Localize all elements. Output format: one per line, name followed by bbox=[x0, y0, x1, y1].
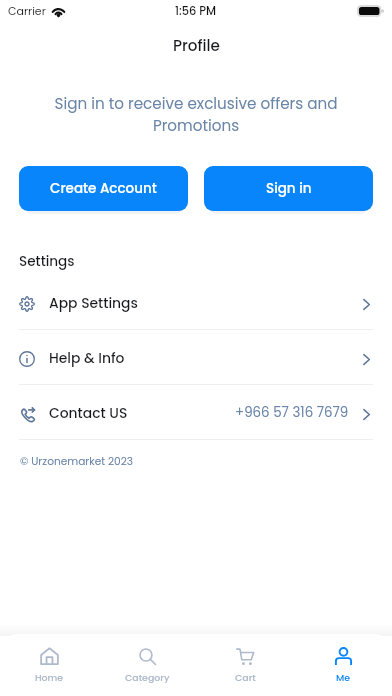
staticText: App Settings bbox=[49, 293, 138, 312]
staticText: © Urzonemarket 2023 bbox=[20, 454, 134, 469]
staticText: Sign in to receive exclusive offers and … bbox=[26, 93, 366, 136]
staticText: 1:56 PM bbox=[175, 3, 217, 19]
staticText: Cart bbox=[235, 671, 256, 684]
button[interactable]: Cart bbox=[196, 634, 294, 684]
staticText: Sign in bbox=[266, 179, 312, 198]
staticText: Category bbox=[125, 671, 170, 684]
button[interactable]: Me bbox=[294, 634, 392, 684]
staticText: Contact US bbox=[49, 403, 128, 422]
staticText: +966 57 316 7679 bbox=[235, 403, 349, 422]
button[interactable]: Create Account bbox=[19, 166, 188, 211]
button[interactable]: Contact US bbox=[0, 385, 392, 439]
button[interactable]: Category bbox=[98, 634, 196, 684]
button[interactable]: Sign in bbox=[204, 166, 373, 211]
staticText: Home bbox=[35, 671, 64, 684]
staticText: Settings bbox=[19, 252, 75, 271]
staticText: Create Account bbox=[50, 179, 157, 198]
button[interactable]: App Settings bbox=[0, 275, 392, 329]
staticText: Me bbox=[336, 671, 351, 684]
staticText: Carrier bbox=[8, 3, 46, 18]
staticText: Help & Info bbox=[49, 348, 125, 367]
button[interactable]: Help & Info bbox=[0, 330, 392, 384]
staticText: Profile bbox=[173, 35, 220, 56]
button[interactable]: Home bbox=[0, 634, 98, 684]
